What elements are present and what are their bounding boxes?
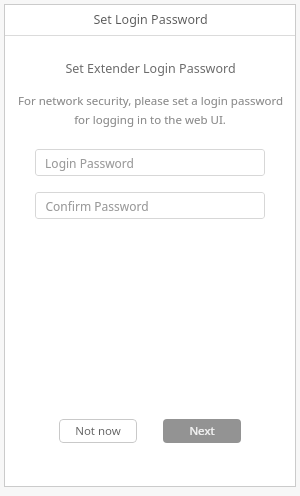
staticText: for logging in to the web UI. bbox=[74, 112, 226, 128]
staticText: Next bbox=[189, 423, 215, 439]
staticText: Set Extender Login Password bbox=[65, 60, 236, 77]
staticText: For network security, please set a login… bbox=[18, 93, 283, 109]
staticText: Login Password bbox=[45, 155, 134, 171]
staticText: Confirm Password bbox=[45, 198, 149, 214]
button[interactable]: Not now bbox=[59, 419, 137, 443]
staticText: Set Login Password bbox=[93, 11, 208, 28]
button[interactable]: Login Password bbox=[35, 149, 265, 176]
button[interactable]: Confirm Password bbox=[35, 192, 265, 219]
button[interactable]: Next bbox=[163, 419, 241, 443]
staticText: Not now bbox=[75, 423, 121, 439]
